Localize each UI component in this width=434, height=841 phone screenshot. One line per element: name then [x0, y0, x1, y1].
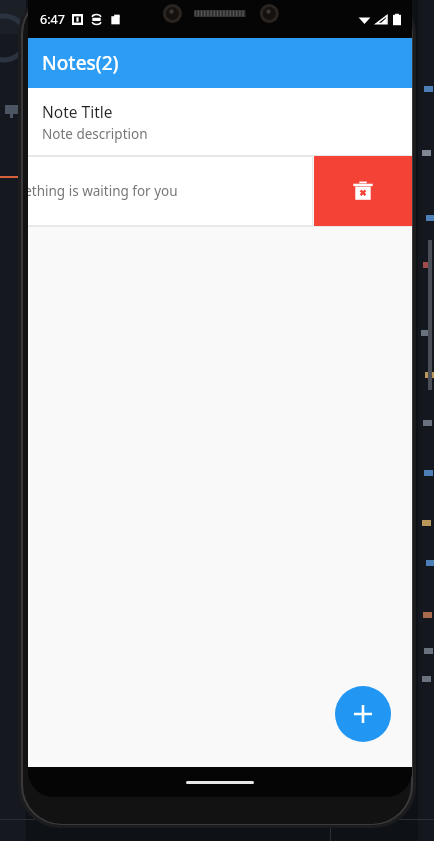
staticText: Something is waiting for you — [28, 182, 178, 200]
button[interactable]: Delete note — [314, 156, 412, 226]
staticText: Note Title — [42, 101, 113, 122]
button[interactable]: Something is waiting for you — [28, 156, 313, 226]
button[interactable]: Add note — [335, 686, 391, 742]
staticText: Notes(2) — [42, 50, 119, 76]
staticText: 6:47 — [40, 11, 65, 28]
button[interactable]: Note Title — [28, 88, 412, 155]
staticText: Note description — [42, 125, 148, 143]
